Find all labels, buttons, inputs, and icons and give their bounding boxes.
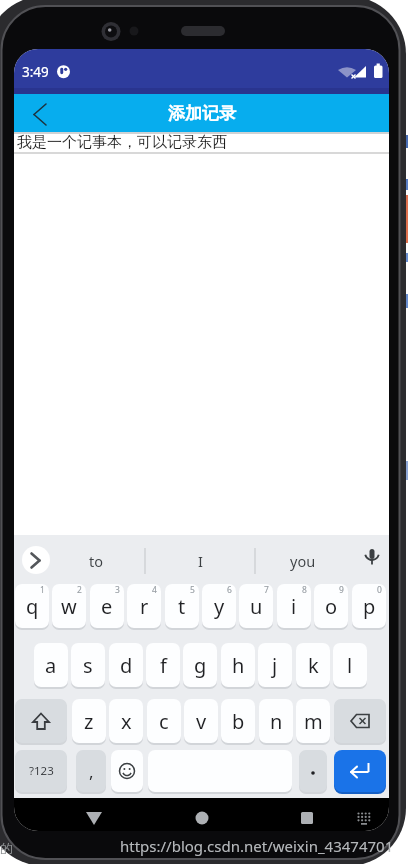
button[interactable]: 添加记录 [14, 94, 389, 132]
button[interactable]: k [296, 643, 330, 687]
staticText: b [232, 708, 245, 735]
staticText: t [178, 593, 186, 620]
staticText: f [160, 652, 167, 679]
button[interactable] [15, 699, 67, 743]
staticText: , [89, 760, 94, 783]
staticText: h [232, 652, 245, 679]
button[interactable]: c [147, 699, 181, 743]
staticText: 3 [115, 584, 120, 596]
button[interactable]: to [76, 551, 116, 571]
button[interactable]: t [165, 584, 199, 628]
staticText: you [290, 551, 316, 571]
button[interactable]: you [283, 551, 323, 571]
staticText: d [120, 652, 133, 679]
button[interactable] [299, 750, 327, 792]
staticText: 我是一个记事本，可以记录东西 [17, 133, 227, 152]
staticText: 添加记录 [168, 103, 236, 124]
staticText: l [347, 652, 353, 679]
button[interactable]: n [259, 699, 293, 743]
staticText: 2 [77, 584, 82, 596]
button[interactable]: m [296, 699, 330, 743]
button[interactable]: s [71, 643, 105, 687]
staticText: https://blog.csdn.net/weixin_43474701 [120, 836, 394, 856]
staticText: 3:49 [22, 63, 49, 81]
button[interactable] [111, 750, 143, 792]
staticText: p [363, 593, 376, 620]
button[interactable]: h [221, 643, 255, 687]
button[interactable]: d [109, 643, 143, 687]
button[interactable]: u [239, 584, 273, 628]
button[interactable] [76, 800, 112, 830]
button[interactable]: o [314, 584, 348, 628]
staticText: 7 [264, 584, 269, 596]
button[interactable]: v [184, 699, 218, 743]
button[interactable]: a [34, 643, 68, 687]
staticText: 4 [152, 584, 157, 596]
button[interactable]: 我是一个记事本，可以记录东西 [14, 134, 389, 154]
staticText: i [291, 593, 297, 620]
staticText: I [198, 551, 203, 571]
button[interactable]: I [180, 551, 220, 571]
staticText: g [194, 652, 207, 679]
staticText: q [26, 593, 39, 620]
staticText: r [140, 593, 149, 620]
button[interactable]: g [183, 643, 217, 687]
staticText: o [325, 593, 338, 620]
staticText: 6 [227, 584, 232, 596]
button[interactable]: y [202, 584, 236, 628]
staticText: to [89, 551, 104, 571]
button[interactable]: f [146, 643, 180, 687]
staticText: c [159, 708, 169, 735]
button[interactable] [22, 546, 50, 574]
button[interactable] [350, 800, 380, 830]
staticText: 9 [339, 584, 344, 596]
button[interactable]: ?123 [15, 750, 67, 792]
staticText: w [61, 593, 77, 620]
staticText: s [83, 652, 93, 679]
button[interactable] [289, 800, 325, 830]
button[interactable] [21, 95, 59, 131]
button[interactable]: p [352, 584, 386, 628]
staticText: z [84, 708, 94, 735]
button[interactable]: i [277, 584, 311, 628]
button[interactable]: z [72, 699, 106, 743]
staticText: 5 [190, 584, 195, 596]
button[interactable]: w [52, 584, 86, 628]
staticText: ?123 [29, 763, 54, 779]
button[interactable]: j [258, 643, 292, 687]
staticText: 的 [0, 840, 13, 856]
staticText: k [308, 652, 319, 679]
button[interactable]: r [127, 584, 161, 628]
staticText: 1 [40, 584, 45, 596]
staticText: n [270, 708, 283, 735]
button[interactable] [184, 800, 220, 830]
button[interactable]: , [76, 750, 106, 792]
button[interactable]: e [90, 584, 124, 628]
button[interactable] [334, 750, 386, 792]
button[interactable] [334, 699, 386, 743]
staticText: m [304, 708, 323, 735]
staticText: e [101, 593, 113, 620]
staticText: a [45, 652, 57, 679]
staticText: x [121, 708, 132, 735]
staticText: u [250, 593, 263, 620]
staticText: 0 [377, 584, 382, 596]
button[interactable]: b [221, 699, 255, 743]
button[interactable]: q [15, 584, 49, 628]
staticText: j [272, 652, 278, 679]
staticText: v [196, 708, 207, 735]
staticText: y [214, 593, 225, 620]
staticText: 8 [302, 584, 307, 596]
button[interactable]: l [333, 643, 367, 687]
button[interactable]: x [109, 699, 143, 743]
button[interactable] [358, 546, 386, 574]
